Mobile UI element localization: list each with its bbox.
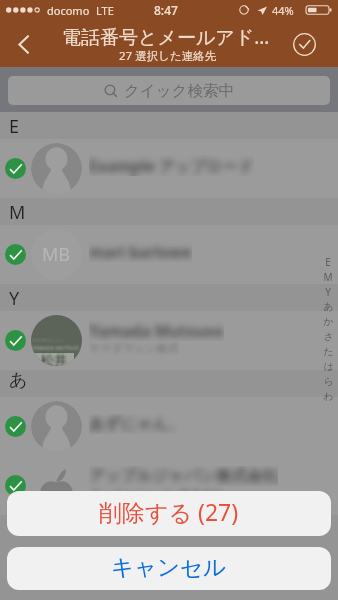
staticText: MB bbox=[42, 242, 71, 267]
staticText: アップルジャパン株式会社 bbox=[89, 466, 278, 486]
staticText: E bbox=[325, 255, 331, 269]
staticText: は bbox=[323, 360, 334, 373]
staticText: キャンセル bbox=[111, 553, 227, 581]
button[interactable]: Confirm selection bbox=[286, 26, 322, 62]
button[interactable]: ヤマダマシン一 bbox=[0, 311, 338, 370]
button[interactable]: クイック検索中 bbox=[8, 76, 330, 105]
button[interactable]: MB bbox=[0, 225, 338, 284]
button[interactable]: Back bbox=[5, 24, 41, 64]
button[interactable]: アップルジャパン株式会社 bbox=[0, 456, 338, 515]
staticText: Y bbox=[9, 286, 20, 311]
staticText: Y bbox=[325, 285, 331, 299]
staticText: 松井 bbox=[41, 352, 67, 366]
staticText: あ bbox=[9, 369, 28, 392]
staticText: 27 選択した連絡先 bbox=[119, 48, 217, 64]
staticText: M bbox=[323, 270, 333, 284]
staticText: LTE bbox=[96, 3, 114, 18]
staticText: ら bbox=[323, 375, 334, 388]
staticText: さ bbox=[323, 330, 334, 343]
staticText: ヤマダマシン一 bbox=[32, 338, 65, 344]
staticText: Yamada Mutsuoo bbox=[89, 320, 224, 341]
staticText: クイック検索中 bbox=[124, 81, 234, 101]
staticText: E bbox=[9, 114, 20, 139]
staticText: Example アップロード bbox=[89, 155, 254, 176]
staticText: M bbox=[9, 200, 26, 225]
button[interactable]: 削除する (27) bbox=[7, 491, 331, 536]
staticText: 削除する (27) bbox=[99, 496, 239, 527]
staticText: 44% bbox=[272, 3, 294, 18]
staticText: 電話番号とメールアド… bbox=[62, 24, 270, 50]
staticText: YAMADA MUTSUO bbox=[32, 344, 80, 351]
staticText: docomo bbox=[47, 3, 90, 18]
staticText: ヤマダマシン株式 bbox=[89, 341, 179, 355]
staticText: あずにゃん、 bbox=[89, 414, 184, 434]
button[interactable]: Example アップロード bbox=[0, 139, 338, 198]
button[interactable]: あずにゃん、 bbox=[0, 397, 338, 456]
staticText: あ bbox=[323, 300, 334, 313]
button[interactable]: キャンセル bbox=[7, 547, 331, 590]
staticText: か bbox=[323, 315, 334, 328]
staticText: mari barlowe bbox=[89, 241, 192, 262]
staticText: アップルジャパン株式会社 bbox=[89, 486, 224, 500]
staticText: 8:47 bbox=[154, 2, 178, 18]
staticText: た bbox=[323, 345, 334, 358]
staticText: わ bbox=[323, 390, 334, 403]
